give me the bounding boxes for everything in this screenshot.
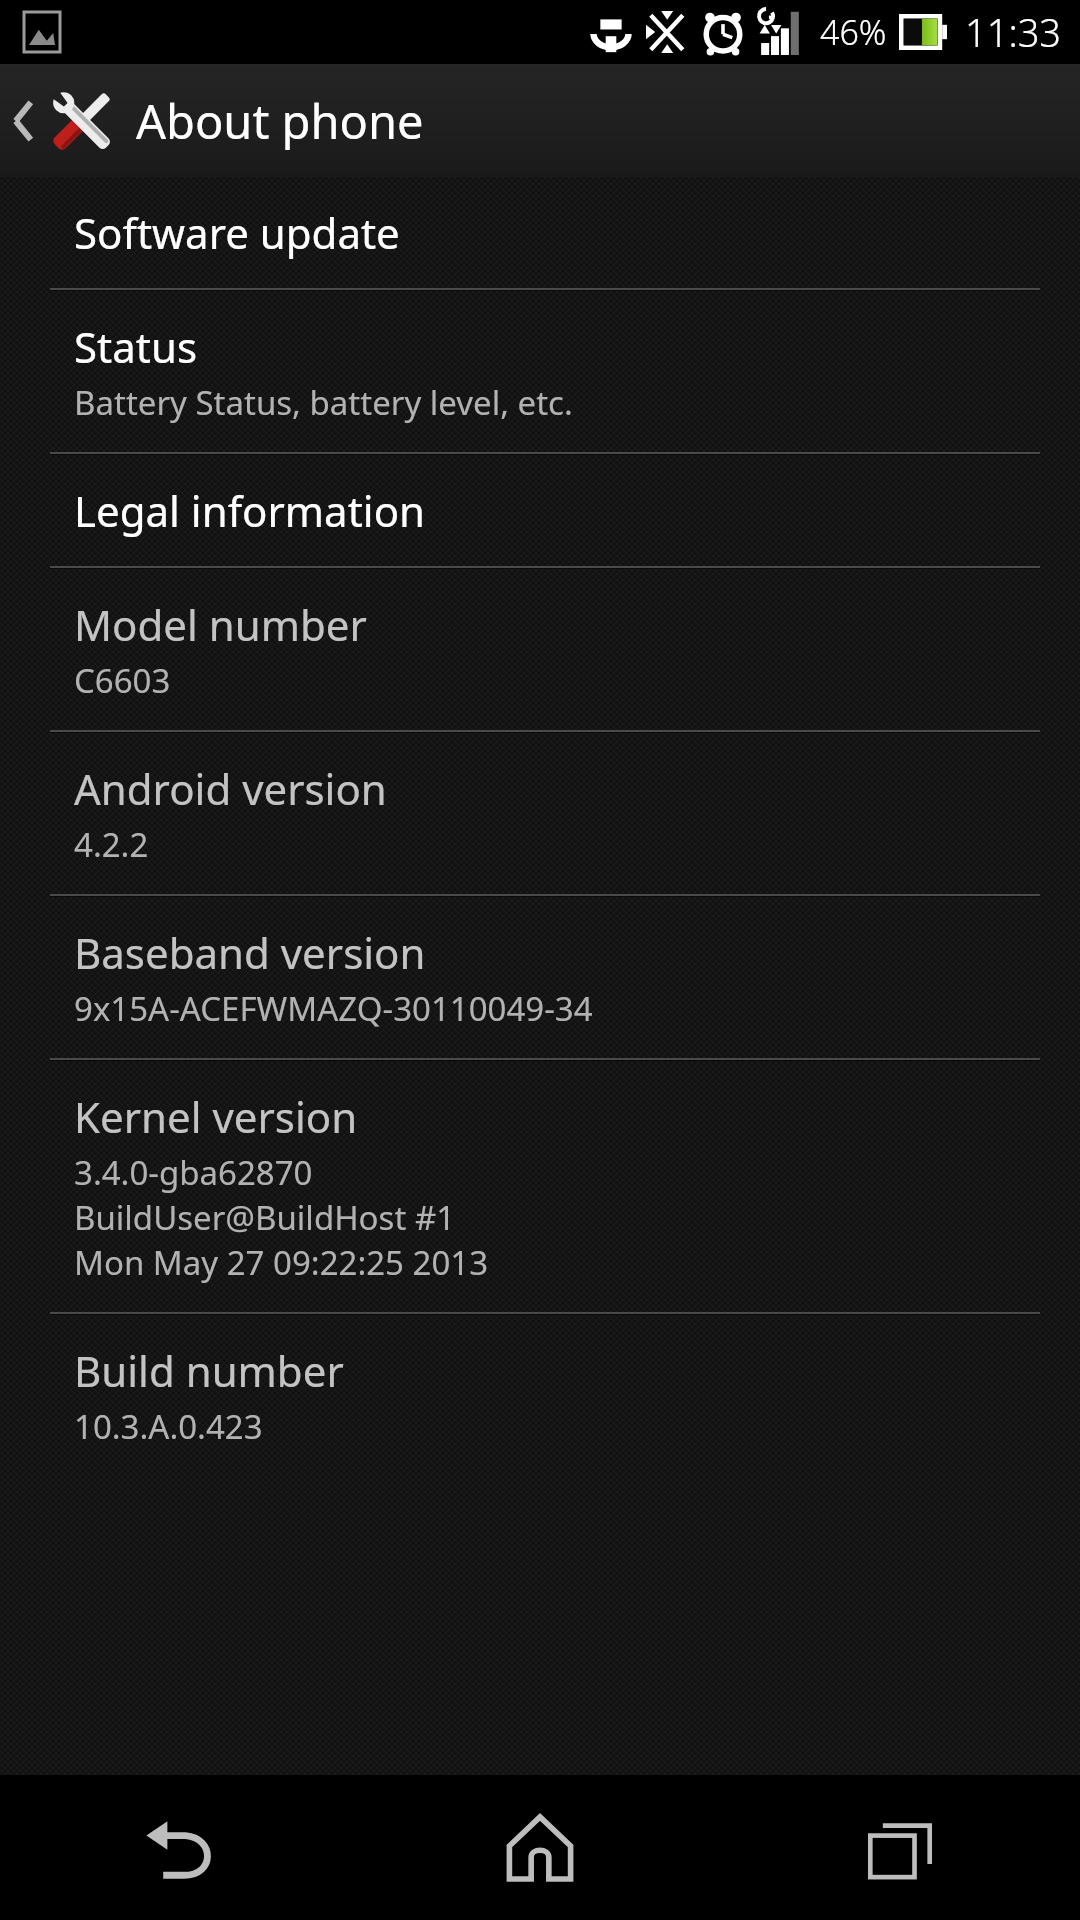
staticText: 9x15A-ACEFWMAZQ-30110049-34	[74, 986, 593, 1031]
staticText: Build number	[74, 1342, 344, 1399]
staticText: Model number	[74, 596, 367, 653]
staticText: About phone	[136, 89, 424, 153]
staticText: Battery Status, battery level, etc.	[74, 380, 573, 425]
button[interactable]: Recent apps	[720, 1775, 1080, 1920]
staticText: 11:33	[965, 6, 1062, 58]
staticText: Baseband version	[74, 924, 426, 981]
staticText: 4.2.2	[74, 822, 149, 867]
button[interactable]: Back	[0, 1775, 360, 1920]
staticText: 10.3.A.0.423	[74, 1404, 263, 1449]
staticText: 3.4.0-gba62870	[74, 1150, 313, 1195]
staticText: 46%	[820, 9, 887, 55]
staticText: C6603	[74, 658, 171, 703]
staticText: BuildUser@BuildHost #1	[74, 1195, 456, 1240]
staticText: Status	[74, 318, 198, 375]
staticText: Android version	[74, 760, 387, 817]
other: Navigate up	[10, 95, 36, 147]
button[interactable]: Home	[360, 1775, 720, 1920]
button[interactable]: Status	[0, 291, 1080, 452]
staticText: Kernel version	[74, 1088, 358, 1145]
button[interactable]: Software update	[0, 177, 1080, 288]
staticText: Legal information	[74, 482, 426, 539]
staticText: Software update	[74, 204, 400, 261]
button[interactable]: Navigate up	[0, 64, 438, 177]
staticText: Mon May 27 09:22:25 2013	[74, 1240, 489, 1285]
button[interactable]: Legal information	[0, 455, 1080, 566]
